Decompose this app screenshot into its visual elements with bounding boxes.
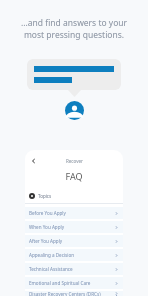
- staticText: Emotional and Spiritual Care: [29, 280, 114, 286]
- button[interactable]: Back: [28, 156, 38, 166]
- staticText: Recover: [66, 158, 83, 164]
- staticText: FAQ: [25, 170, 123, 182]
- staticText: Disaster Recovery Centers (DRCs): [29, 291, 114, 296]
- staticText: Topics: [38, 193, 52, 199]
- button[interactable]: When You Apply: [25, 221, 123, 233]
- button[interactable]: Topics: [25, 190, 123, 201]
- staticText: When You Apply: [29, 224, 114, 230]
- button[interactable]: Disaster Recovery Centers (DRCs): [25, 291, 123, 296]
- staticText: Appealing a Decision: [29, 252, 114, 258]
- staticText: After You Apply: [29, 238, 114, 244]
- button[interactable]: Technical Assistance: [25, 263, 123, 275]
- staticText: ...and find answers to your most pressin…: [12, 17, 136, 41]
- button[interactable]: Emotional and Spiritual Care: [25, 277, 123, 289]
- button[interactable]: Before You Apply: [25, 207, 123, 219]
- staticText: Technical Assistance: [29, 266, 114, 272]
- staticText: Before You Apply: [29, 210, 114, 216]
- button[interactable]: Appealing a Decision: [25, 249, 123, 261]
- button[interactable]: After You Apply: [25, 235, 123, 247]
